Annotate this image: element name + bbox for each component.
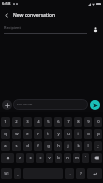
staticText: u	[67, 131, 70, 137]
staticText: s	[15, 143, 18, 149]
staticText: w	[15, 131, 19, 137]
staticText: k	[77, 143, 80, 149]
staticText: z	[19, 155, 21, 161]
staticText: Enter message	[17, 103, 33, 106]
staticText: j	[67, 143, 69, 149]
button[interactable]: Enter message	[13, 99, 88, 110]
staticText: '	[85, 155, 86, 161]
button[interactable]: 9	[84, 117, 92, 127]
button[interactable]: s	[12, 141, 21, 151]
button[interactable]: l	[84, 141, 92, 151]
staticText: 5	[47, 119, 50, 125]
button[interactable]: f	[34, 141, 42, 151]
button[interactable]: 3	[23, 117, 32, 127]
staticText: t	[47, 131, 49, 137]
button[interactable]: Enter	[87, 168, 102, 179]
staticText: 1	[4, 119, 7, 125]
button[interactable]: w	[12, 129, 21, 139]
button[interactable]: Choose contact	[90, 24, 100, 34]
button[interactable]: z	[16, 153, 24, 163]
button[interactable]: b	[55, 153, 62, 163]
staticText: l	[87, 143, 89, 149]
button[interactable]: Add attachment	[2, 100, 12, 110]
button[interactable]: .	[65, 168, 74, 179]
button[interactable]: j	[64, 141, 72, 151]
button[interactable]: r	[34, 129, 42, 139]
button[interactable]: 4	[34, 117, 42, 127]
staticText: ;	[97, 143, 99, 149]
staticText: ,	[17, 171, 19, 177]
staticText: 6	[57, 119, 60, 125]
staticText: 3	[26, 119, 29, 125]
button[interactable]: '	[82, 153, 89, 163]
staticText: 8	[77, 119, 80, 125]
staticText: a	[4, 143, 7, 149]
staticText: New conversation	[13, 12, 56, 19]
button[interactable]: g	[44, 141, 52, 151]
button[interactable]: 2	[12, 117, 21, 127]
staticText: 7	[67, 119, 70, 125]
staticText: b	[57, 155, 60, 161]
staticText: p	[97, 131, 100, 137]
staticText: Recipient	[4, 25, 21, 30]
button[interactable]: Shift	[1, 153, 14, 163]
button[interactable]: u	[64, 129, 72, 139]
button[interactable]: 5	[44, 117, 52, 127]
button[interactable]: ,	[14, 168, 21, 179]
button[interactable]: k	[74, 141, 82, 151]
button[interactable]: 8	[74, 117, 82, 127]
button[interactable]: q	[1, 129, 10, 139]
button[interactable]: ?	[76, 168, 85, 179]
button[interactable]: !#1	[1, 168, 12, 179]
button[interactable]: m	[73, 153, 80, 163]
button[interactable]: y	[54, 129, 62, 139]
staticText: e	[26, 131, 29, 137]
staticText: h	[57, 143, 60, 149]
staticText: m	[75, 155, 79, 161]
button[interactable]: 6	[54, 117, 62, 127]
button[interactable]: ;	[94, 141, 102, 151]
button[interactable]: t	[44, 129, 52, 139]
staticText: 4	[37, 119, 40, 125]
staticText: y	[57, 131, 60, 137]
button[interactable]: Send	[90, 100, 100, 110]
staticText: c	[39, 155, 42, 161]
staticText: r	[37, 131, 39, 137]
staticText: v	[48, 155, 51, 161]
button[interactable]: a	[1, 141, 10, 151]
staticText: d	[26, 143, 29, 149]
staticText: n	[66, 155, 69, 161]
button[interactable]: v	[46, 153, 53, 163]
staticText: x	[29, 155, 32, 161]
button[interactable]: i	[74, 129, 82, 139]
staticText: g	[47, 143, 50, 149]
staticText: .	[69, 171, 71, 177]
button[interactable]: o	[84, 129, 92, 139]
staticText: !#1	[4, 172, 9, 176]
button[interactable]: p	[94, 129, 102, 139]
staticText: 0	[97, 119, 100, 125]
button[interactable]: x	[26, 153, 34, 163]
staticText: i	[77, 131, 79, 137]
button[interactable]: d	[23, 141, 32, 151]
staticText: o	[87, 131, 90, 137]
button[interactable]: Backspace	[91, 153, 102, 163]
staticText: 6:58	[2, 1, 11, 7]
button[interactable]: h	[54, 141, 62, 151]
staticText: 2	[15, 119, 18, 125]
staticText: 9	[87, 119, 90, 125]
button[interactable]: Back	[1, 10, 12, 21]
button[interactable]: 0	[94, 117, 102, 127]
staticText: f	[37, 143, 39, 149]
button[interactable]: e	[23, 129, 32, 139]
button[interactable]: n	[64, 153, 71, 163]
staticText: q	[4, 131, 7, 137]
button[interactable]: 7	[64, 117, 72, 127]
button[interactable]: c	[36, 153, 44, 163]
staticText: ?	[80, 171, 82, 177]
button[interactable]: 1	[1, 117, 10, 127]
